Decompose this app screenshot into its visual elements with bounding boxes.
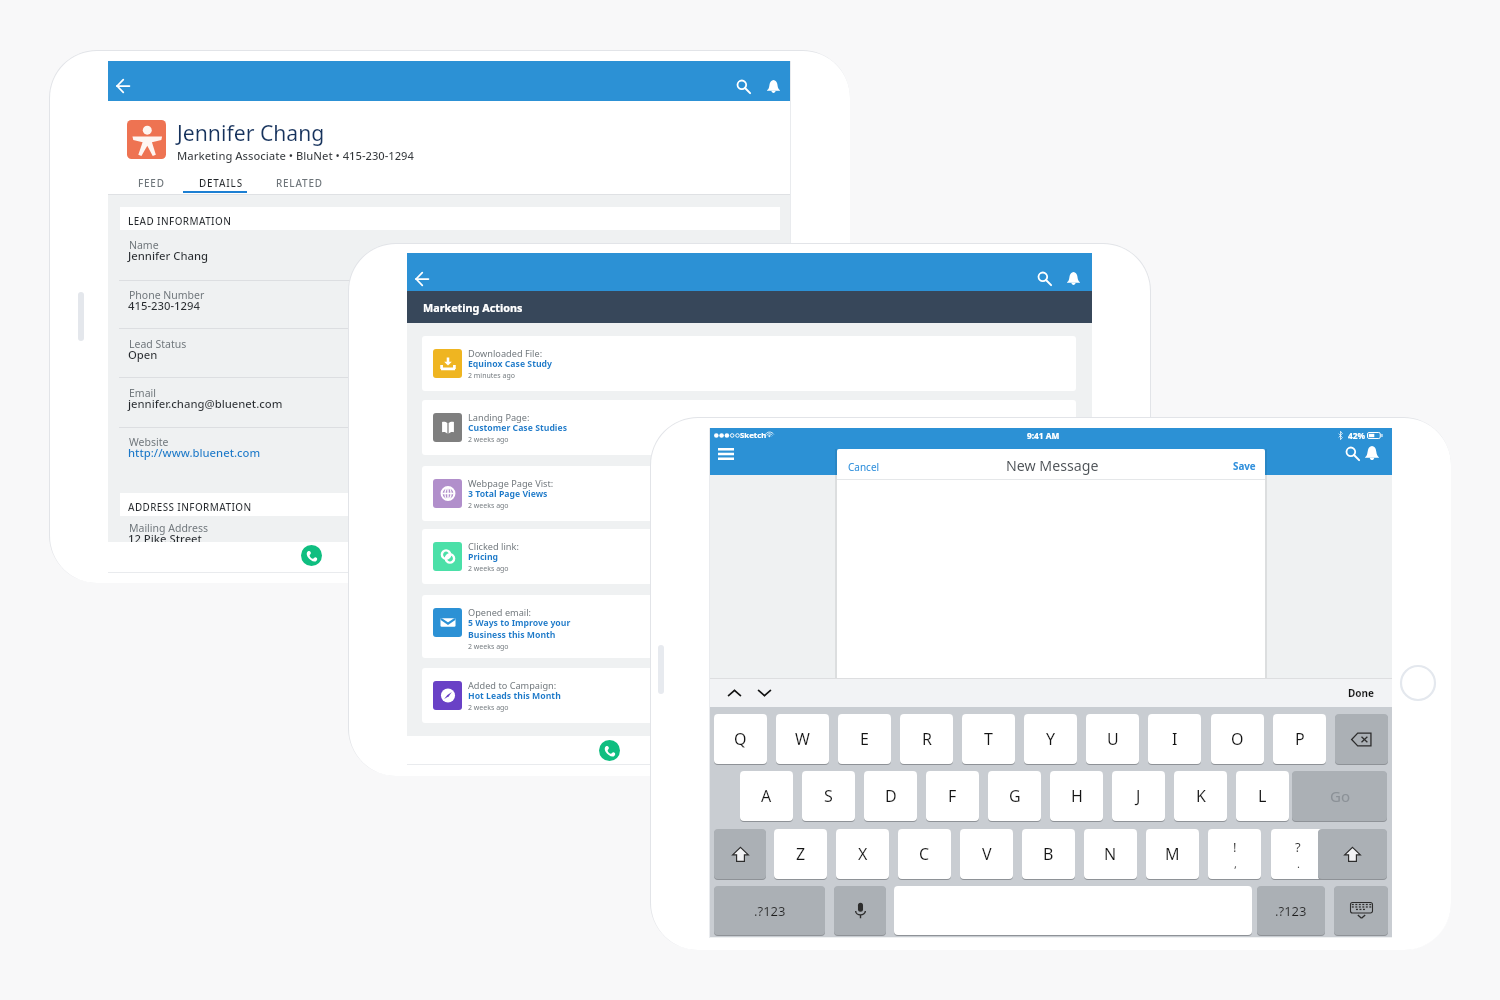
button[interactable]: Notifications [758,71,788,101]
button[interactable]: D [864,771,917,821]
button[interactable]: Shift [1318,829,1387,879]
staticText: T [984,728,993,750]
button[interactable]: .?123 [1257,886,1325,935]
button[interactable]: Cancel [848,460,880,474]
staticText: Jennifer Chang [177,118,325,147]
staticText: Hot Leads this Month [468,690,561,702]
staticText: E [860,728,869,750]
button[interactable]: FEED [119,173,183,208]
staticText: 2 weeks ago [468,642,509,652]
staticText: Jennifer Chang [128,248,209,263]
button[interactable]: Y [1024,714,1077,764]
button[interactable]: Search [728,71,758,101]
button[interactable]: H [1050,771,1103,821]
staticText: . [1297,856,1300,871]
button[interactable]: E [838,714,891,764]
staticText: 2 weeks ago [468,435,509,445]
staticText: I [1172,728,1178,750]
button[interactable]: V [960,829,1013,879]
button[interactable]: P [1273,714,1326,764]
button[interactable]: B [1022,829,1075,879]
button[interactable]: A [740,771,793,821]
button[interactable]: Dictate [834,886,886,935]
button[interactable]: N [1084,829,1137,879]
staticText: Marketing Associate • BluNet • 415-230-1… [177,148,414,163]
button[interactable]: Backspace [1335,714,1388,764]
staticText: Equinox Case Study [468,358,553,370]
button[interactable]: L [1236,771,1289,821]
button[interactable]: Q [714,714,767,764]
button[interactable]: S [802,771,855,821]
button[interactable]: Search [1029,263,1059,293]
staticText: Z [796,843,806,865]
button[interactable]: Back [108,71,138,101]
staticText: G [1009,785,1021,807]
staticText: Name [129,238,159,252]
button[interactable]: Shift [714,829,766,879]
staticText: Customer Case Studies [468,422,568,434]
staticText: M [1165,843,1180,865]
button[interactable]: Search [1338,439,1366,467]
button[interactable]: F [926,771,979,821]
button[interactable]: R [900,714,953,764]
button[interactable]: O [1211,714,1264,764]
staticText: W [795,728,810,750]
button[interactable]: I [1148,714,1201,764]
button[interactable]: X [836,829,889,879]
staticText: , [1234,856,1237,871]
button[interactable]: Landing Page: [422,400,1076,455]
button[interactable]: Previous field [723,682,745,704]
button[interactable]: Back [407,264,437,294]
button[interactable]: Done [1343,682,1379,704]
button[interactable]: Menu [708,438,744,470]
button[interactable]: .?123 [714,886,825,935]
button[interactable]: T [962,714,1015,764]
button[interactable]: W [776,714,829,764]
staticText: Clicked link: [468,540,519,553]
staticText: LEAD INFORMATION [128,214,232,227]
staticText: .?123 [754,902,786,920]
button[interactable]: M [1146,829,1199,879]
button[interactable]: Hide keyboard [1334,886,1388,935]
staticText: U [1107,728,1119,750]
staticText: J [1136,785,1141,807]
button[interactable]: Go [1292,771,1387,821]
button[interactable]: Downloaded File: [422,336,1076,391]
button[interactable]: Save [1233,460,1256,473]
button[interactable]: C [898,829,951,879]
staticText: .?123 [1275,902,1307,920]
staticText: 42% [1348,430,1365,441]
button[interactable]: DETAILS [189,173,253,208]
staticText: http://www.bluenet.com [128,445,261,460]
button[interactable]: K [1174,771,1227,821]
staticText: FEED [138,176,165,189]
staticText: Mailing Address [129,521,208,535]
button[interactable]: Call [301,545,322,566]
staticText: DETAILS [199,176,243,189]
button[interactable]: U [1086,714,1139,764]
staticText: ADDRESS INFORMATION [128,500,252,513]
button[interactable]: Z [774,829,827,879]
button[interactable]: J [1112,771,1165,821]
button[interactable]: Added to Campaign: [422,668,1076,723]
staticText: B [1043,843,1054,865]
button[interactable]: RELATED [267,173,331,208]
staticText: 2 weeks ago [468,501,509,511]
button[interactable]: Call [599,740,620,761]
staticText: Phone Number [129,288,205,302]
staticText: K [1196,785,1206,807]
button[interactable]: Notifications [1358,439,1386,467]
button[interactable]: Webpage Page Vist: [422,466,1076,521]
button[interactable]: Opened email: [422,595,1076,658]
staticText: F [948,785,957,807]
button[interactable]: G [988,771,1041,821]
staticText: Webpage Page Vist: [468,477,554,490]
button[interactable]: Next field [753,682,775,704]
staticText: C [919,843,930,865]
button[interactable]: Clicked link: [422,529,1076,584]
button[interactable]: ! [1208,829,1261,879]
staticText: Open [128,347,158,362]
button[interactable]: Notifications [1058,263,1088,293]
button[interactable]: ? [1271,829,1324,879]
